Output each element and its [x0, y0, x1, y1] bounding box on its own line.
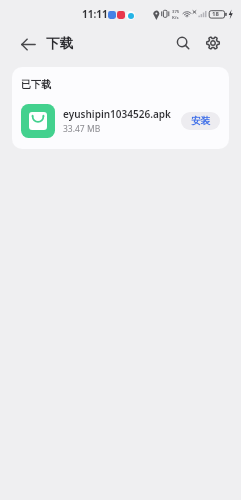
- staticText: 33.47 MB: [63, 123, 101, 135]
- staticText: K/s: [172, 15, 179, 21]
- staticText: 375: [172, 9, 180, 15]
- staticText: 安装: [191, 115, 210, 127]
- staticText: 已下载: [21, 78, 51, 91]
- button[interactable]: Search: [167, 28, 199, 60]
- button[interactable]: Back: [12, 28, 44, 60]
- staticText: 11:11: [82, 7, 108, 21]
- button[interactable]: eyushipin1034526.apk: [12, 100, 229, 142]
- button[interactable]: 安装: [181, 112, 220, 130]
- staticText: 下载: [46, 35, 73, 52]
- staticText: eyushipin1034526.apk: [63, 107, 171, 121]
- button[interactable]: Settings: [197, 27, 229, 59]
- staticText: 18: [212, 10, 219, 18]
